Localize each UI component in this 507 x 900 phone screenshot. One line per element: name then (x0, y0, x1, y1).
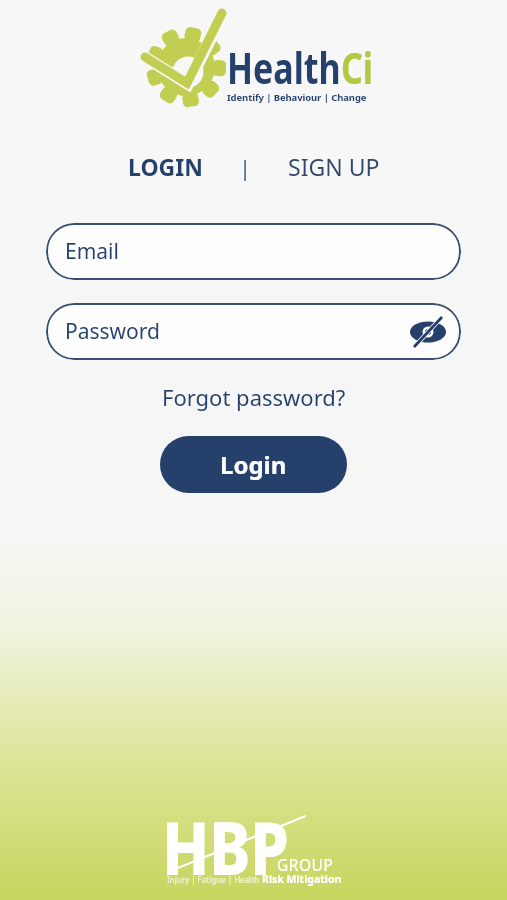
staticText: Login (220, 448, 287, 481)
staticText: HBP (162, 797, 289, 896)
button[interactable]: LOGIN (128, 151, 203, 182)
staticText: GROUP (277, 854, 334, 875)
button[interactable] (406, 310, 450, 354)
staticText: Email (65, 237, 119, 266)
staticText: Password (65, 317, 160, 346)
button[interactable]: Login (160, 436, 347, 493)
button[interactable]: Email (46, 223, 461, 280)
staticText: Forgot password? (162, 382, 346, 412)
button[interactable]: Forgot password? (162, 382, 346, 412)
staticText: Identify | Behaviour | Change (227, 91, 367, 104)
staticText: Injury | Fatigue | Health (167, 874, 262, 885)
staticText: Ci (341, 39, 373, 97)
staticText: Risk Mitigation (262, 872, 342, 886)
staticText: | (239, 152, 252, 182)
staticText: SIGN UP (288, 151, 380, 182)
button[interactable]: Password (46, 303, 461, 360)
staticText: Health (227, 39, 341, 97)
button[interactable]: SIGN UP (288, 151, 380, 182)
staticText: LOGIN (128, 151, 203, 182)
